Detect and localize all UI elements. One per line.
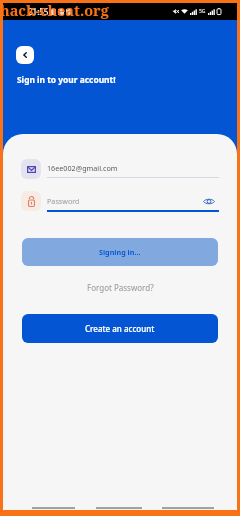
staticText: hack-cheat.org	[0, 0, 109, 20]
staticText: Password	[47, 196, 80, 206]
button[interactable]: Back	[16, 46, 34, 64]
staticText: 21:55	[28, 6, 49, 17]
staticText: 5G	[199, 8, 206, 15]
staticText: Forgot Password?	[87, 282, 154, 293]
button[interactable]: Password	[47, 195, 218, 207]
staticText: Sign in to your account!	[17, 74, 116, 85]
button[interactable]: 16ee002@gmail.com	[47, 162, 218, 174]
button[interactable]: Create an account	[22, 314, 218, 343]
button[interactable]: Signing in...	[22, 238, 218, 266]
staticText: Create an account	[85, 323, 155, 334]
button[interactable]: Forgot Password?	[3, 280, 237, 294]
staticText: Signing in...	[99, 247, 141, 257]
button[interactable]: Show password	[201, 195, 217, 207]
staticText: 16ee002@gmail.com	[47, 163, 118, 173]
